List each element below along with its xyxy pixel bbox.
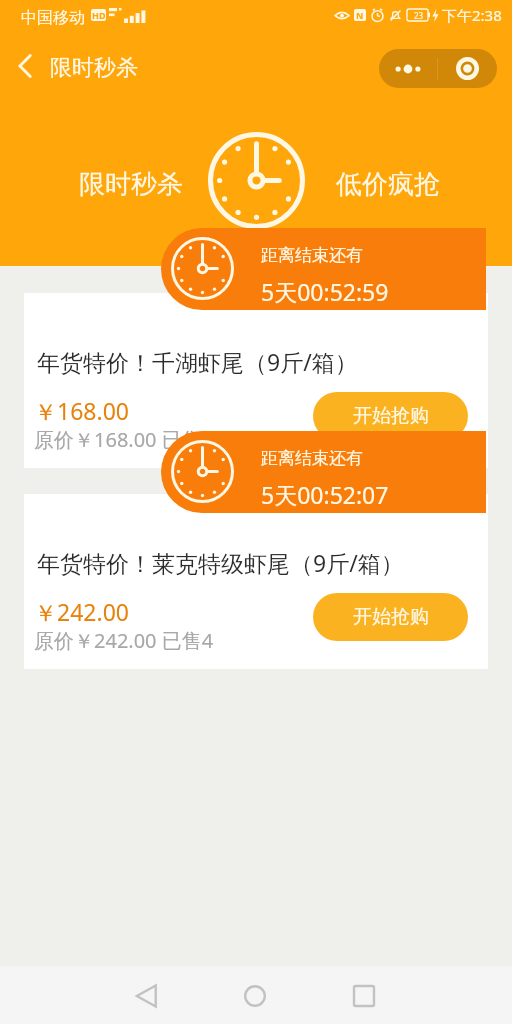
staticText: 开始抢购: [353, 404, 429, 428]
staticText: 限时秒杀: [50, 54, 138, 82]
staticText: 23: [414, 10, 424, 21]
button[interactable]: Back: [110, 967, 182, 1024]
staticText: 中国移动: [21, 8, 85, 28]
staticText: 距离结束还有: [261, 448, 363, 469]
staticText: 原价￥168.00 已售: [34, 426, 202, 453]
button[interactable]: Back: [5, 46, 45, 86]
staticText: 低价疯抢: [336, 168, 440, 201]
staticText: 距离结束还有: [261, 245, 363, 266]
staticText: 年货特价！莱克特级虾尾（9斤/箱）: [37, 547, 404, 578]
staticText: ￥242.00: [34, 596, 129, 627]
button[interactable]: More options: [379, 49, 437, 88]
staticText: N: [356, 9, 364, 21]
staticText: 原价￥242.00 已售4: [34, 627, 214, 654]
staticText: 下午2:38: [442, 5, 502, 25]
staticText: 5天00:52:07: [261, 479, 389, 510]
button[interactable]: 距离结束还有: [161, 431, 486, 513]
button[interactable]: Close mini program: [438, 49, 497, 88]
button[interactable]: Home: [219, 967, 291, 1024]
button[interactable]: Recent apps: [328, 967, 400, 1024]
staticText: 开始抢购: [353, 605, 429, 629]
staticText: 限时秒杀: [79, 168, 183, 201]
staticText: 年货特价！千湖虾尾（9斤/箱）: [37, 346, 358, 377]
staticText: 5天00:52:59: [261, 276, 389, 307]
button[interactable]: 开始抢购: [313, 392, 468, 440]
button[interactable]: 开始抢购: [313, 593, 468, 641]
button[interactable]: 年货特价！千湖虾尾（9斤/箱）: [24, 293, 488, 468]
button[interactable]: 距离结束还有: [161, 228, 486, 310]
staticText: ￥168.00: [34, 395, 129, 426]
button[interactable]: 年货特价！莱克特级虾尾（9斤/箱）: [24, 494, 488, 669]
staticText: HD: [92, 9, 106, 21]
